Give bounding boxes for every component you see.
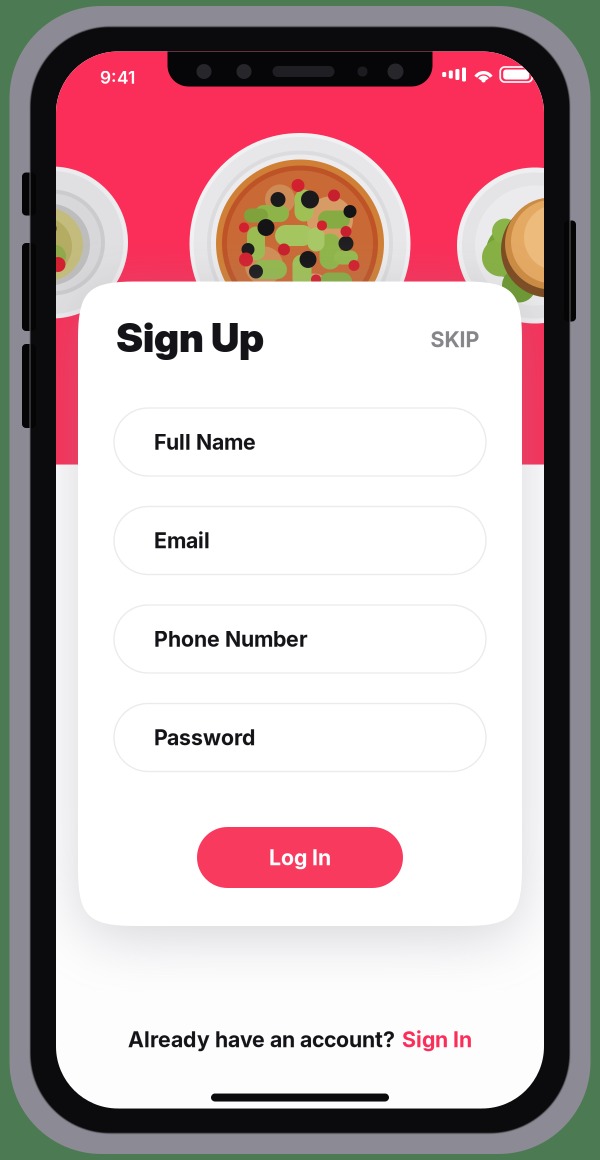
button[interactable]: Phone Number <box>114 605 486 673</box>
button[interactable]: Email <box>114 506 486 574</box>
staticText: 9:41 <box>100 67 135 88</box>
staticText: SKIP <box>430 327 479 352</box>
button[interactable]: Password <box>114 703 486 771</box>
button[interactable]: SKIP <box>426 320 484 358</box>
button[interactable]: Sign In <box>402 1027 472 1052</box>
staticText: Password <box>154 725 255 750</box>
staticText: Sign In <box>402 1027 472 1052</box>
staticText: Already have an account? <box>128 1027 395 1052</box>
button[interactable]: Full Name <box>114 408 486 476</box>
staticText: Email <box>154 528 210 553</box>
staticText: Full Name <box>154 429 256 455</box>
button[interactable]: Log In <box>197 827 403 888</box>
staticText: Log In <box>269 845 331 870</box>
staticText: Sign Up <box>116 313 264 362</box>
staticText: Phone Number <box>154 626 308 652</box>
